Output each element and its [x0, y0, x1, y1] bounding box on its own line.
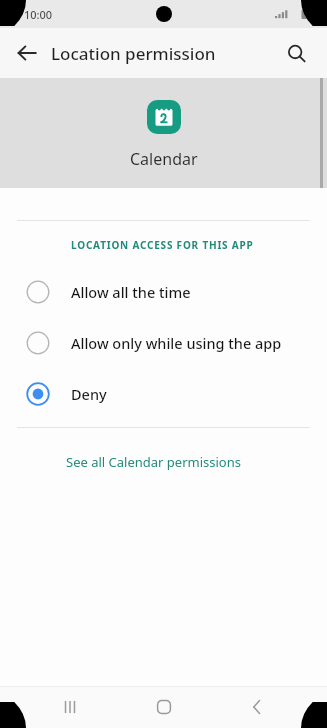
button[interactable]: Deny	[0, 368, 327, 419]
button[interactable]: Back	[8, 34, 46, 72]
staticText: Deny	[71, 384, 107, 404]
staticText: Location permission	[51, 42, 216, 65]
button[interactable]: Recents	[46, 686, 94, 728]
button[interactable]: Search	[277, 34, 315, 72]
button[interactable]: Home	[140, 686, 188, 728]
staticText: LOCATION ACCESS FOR THIS APP	[71, 238, 254, 252]
staticText: See all Calendar permissions	[66, 453, 241, 471]
staticText: Allow only while using the app	[71, 333, 282, 353]
button[interactable]: Allow only while using the app	[0, 317, 327, 368]
button[interactable]: Allow all the time	[0, 266, 327, 317]
staticText: Allow all the time	[71, 282, 191, 302]
staticText: Calendar	[130, 148, 198, 170]
staticText: 10:00	[24, 7, 53, 22]
button[interactable]: See all Calendar permissions	[54, 447, 253, 477]
button[interactable]: Back	[233, 686, 281, 728]
